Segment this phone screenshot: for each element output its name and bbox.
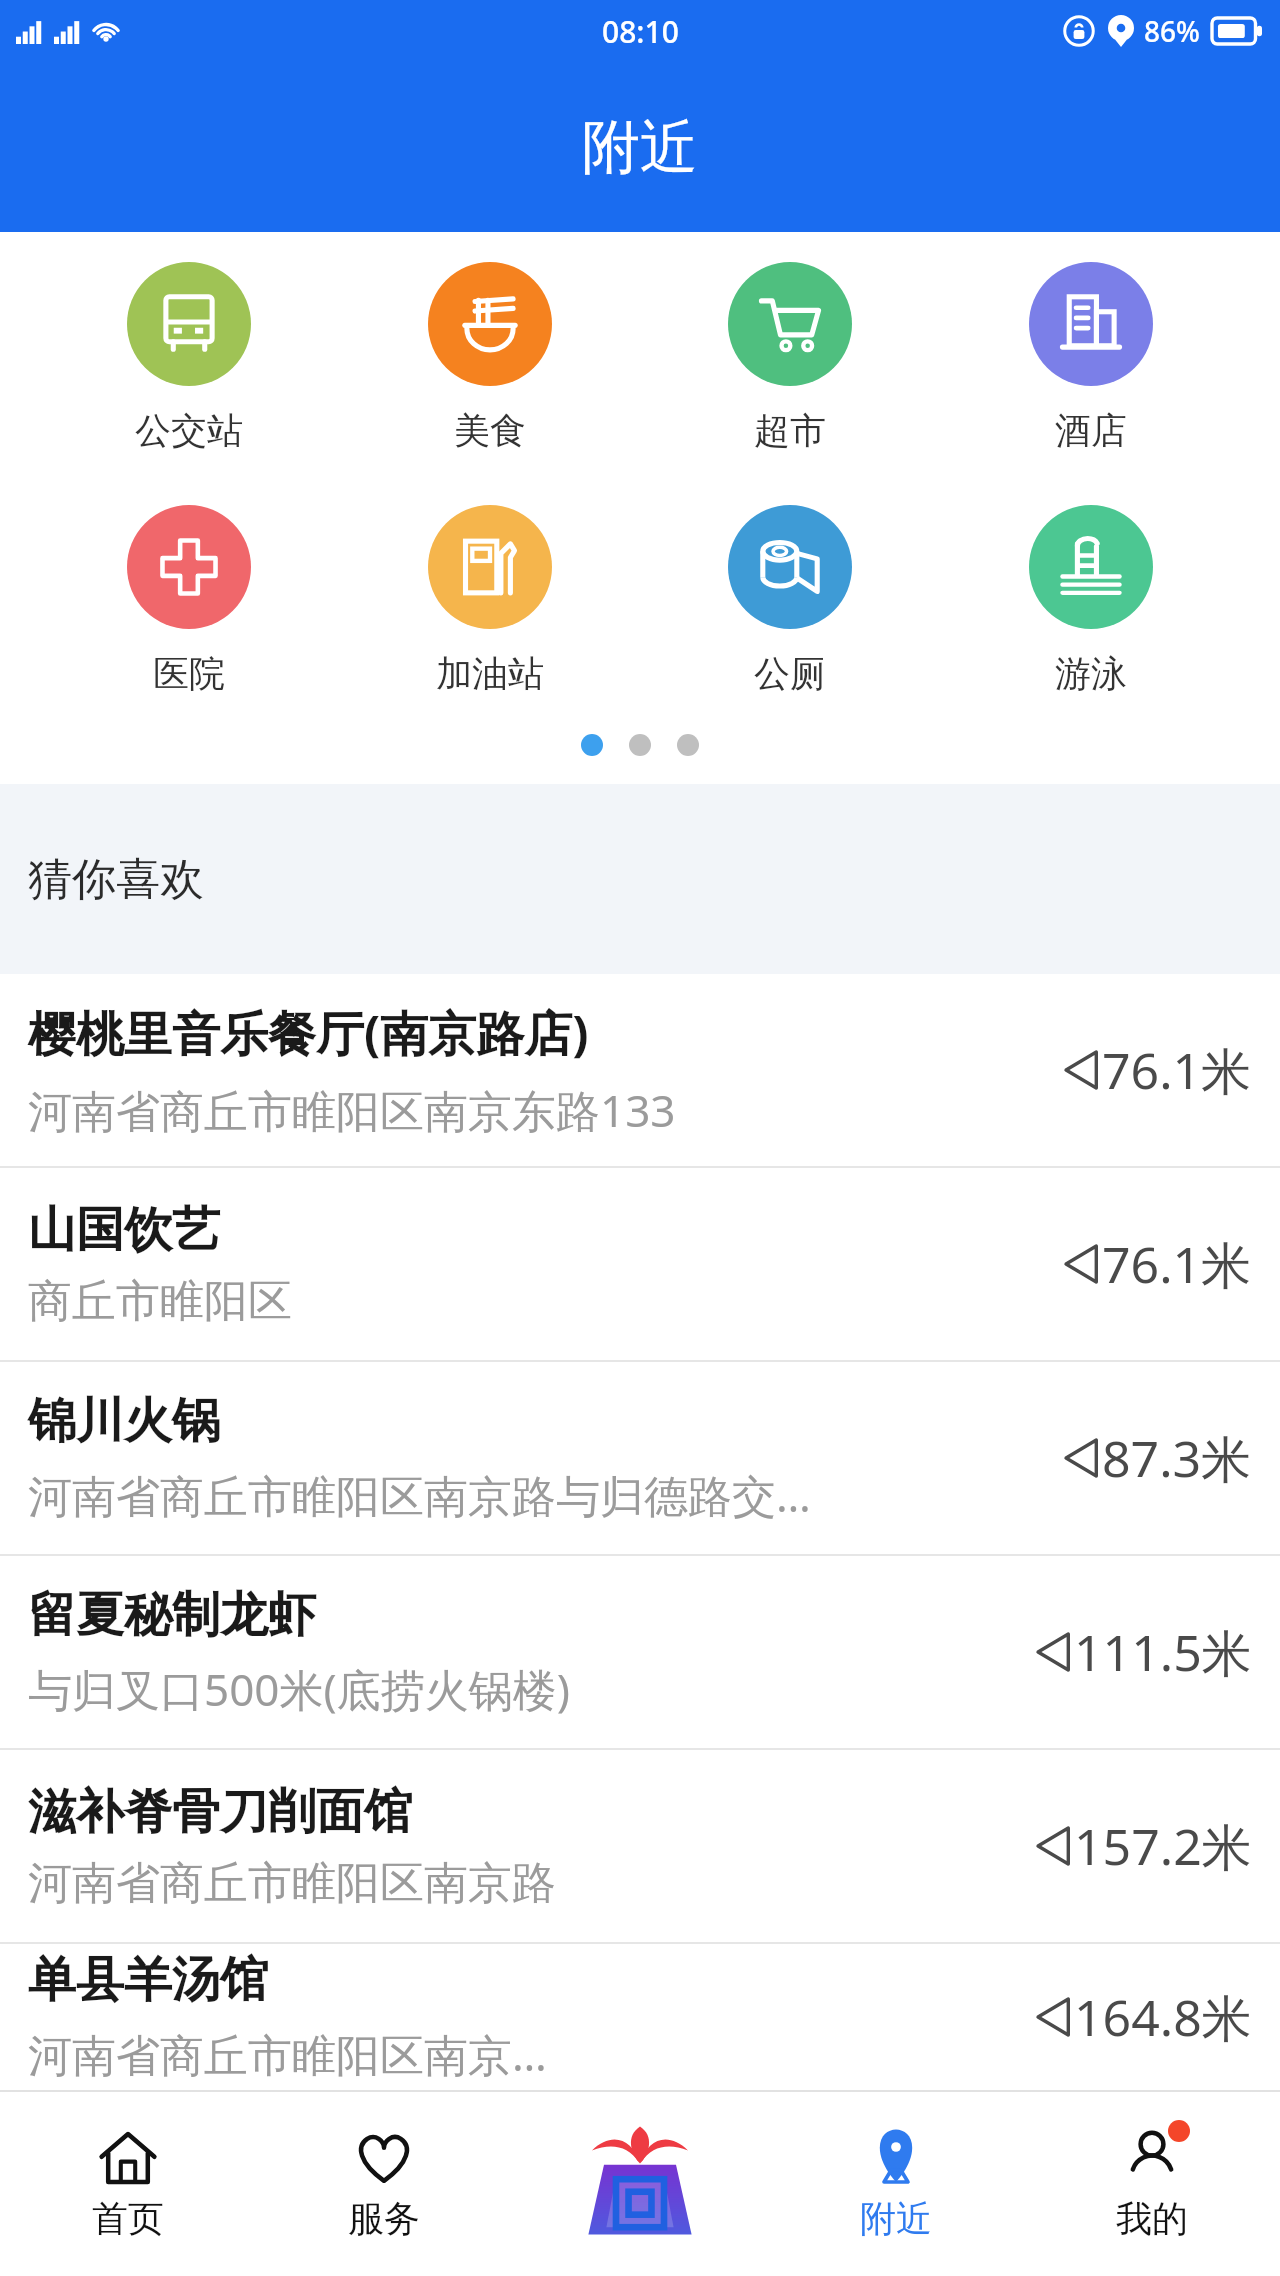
button[interactable]: 加油站 xyxy=(378,499,602,702)
staticText: 医院 xyxy=(153,651,225,696)
staticText: 锦川火锅 xyxy=(28,1391,220,1451)
button[interactable]: 医院 xyxy=(77,499,301,702)
staticText: 商丘市睢阳区 xyxy=(28,1274,292,1329)
button[interactable]: 美食 xyxy=(378,256,602,459)
staticText: 河南省商丘市睢阳区南京东路133 xyxy=(28,1080,676,1140)
button[interactable]: 樱桃里音乐餐厅(南京路店) xyxy=(0,974,1280,1166)
button[interactable]: 留夏秘制龙虾 xyxy=(0,1556,1280,1748)
staticText: 08:10 xyxy=(602,11,679,52)
button[interactable]: 首页 xyxy=(0,2092,256,2276)
button[interactable]: 锦川火锅 xyxy=(0,1362,1280,1554)
staticText: 留夏秘制龙虾 xyxy=(28,1585,316,1645)
staticText: 附近 xyxy=(582,111,698,184)
staticText: 公交站 xyxy=(135,408,243,453)
staticText: 山国饮艺 xyxy=(28,1200,220,1260)
button[interactable]: 游泳 xyxy=(979,499,1203,702)
button[interactable]: 服务 xyxy=(256,2092,512,2276)
staticText: 河南省商丘市睢阳区南京路 xyxy=(28,1856,556,1911)
button[interactable]: 我的 xyxy=(1024,2092,1280,2276)
staticText: 服务 xyxy=(348,2196,420,2241)
button[interactable]: 公厕 xyxy=(678,499,902,702)
staticText: 游泳 xyxy=(1055,651,1127,696)
staticText: 河南省商丘市睢阳区南京路与归德路交… xyxy=(28,1465,811,1525)
staticText: 首页 xyxy=(92,2196,164,2241)
button[interactable]: 单县羊汤馆 xyxy=(0,1944,1280,2090)
staticText: 单县羊汤馆 xyxy=(28,1950,268,2010)
staticText: 76.1米 xyxy=(1102,1230,1252,1298)
staticText: 157.2米 xyxy=(1074,1812,1252,1880)
button[interactable]: 首页入口 xyxy=(512,2092,768,2276)
staticText: 164.8米 xyxy=(1074,1983,1252,2051)
button[interactable]: 滋补脊骨刀削面馆 xyxy=(0,1750,1280,1942)
button[interactable]: 公交站 xyxy=(77,256,301,459)
staticText: 87.3米 xyxy=(1102,1424,1252,1492)
staticText: 美食 xyxy=(454,408,526,453)
staticText: 猜你喜欢 xyxy=(28,852,204,907)
staticText: 滋补脊骨刀削面馆 xyxy=(28,1782,412,1842)
staticText: 酒店 xyxy=(1055,408,1127,453)
staticText: 公厕 xyxy=(754,651,826,696)
staticText: 加油站 xyxy=(436,651,544,696)
button[interactable]: 超市 xyxy=(678,256,902,459)
button[interactable]: 酒店 xyxy=(979,256,1203,459)
staticText: 111.5米 xyxy=(1074,1618,1252,1686)
staticText: 与归叉口500米(底捞火锅楼) xyxy=(28,1659,570,1719)
staticText: 河南省商丘市睢阳区南京… xyxy=(28,2024,547,2084)
staticText: 附近 xyxy=(860,2196,932,2241)
staticText: 我的 xyxy=(1116,2196,1188,2241)
staticText: 86% xyxy=(1144,12,1200,50)
button[interactable]: 山国饮艺 xyxy=(0,1168,1280,1360)
staticText: 76.1米 xyxy=(1102,1036,1252,1104)
staticText: 樱桃里音乐餐厅(南京路店) xyxy=(28,1000,589,1066)
staticText: 超市 xyxy=(754,408,826,453)
button[interactable]: 附近 xyxy=(768,2092,1024,2276)
